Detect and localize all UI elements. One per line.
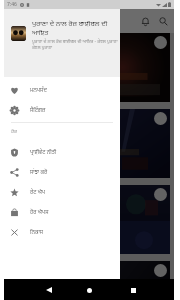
button[interactable]: Back: [42, 283, 56, 297]
button[interactable]: [120, 33, 170, 102]
button[interactable]: Search: [156, 14, 171, 29]
staticText: ਸੈਟਿੰਗਜ਼: [30, 107, 46, 114]
button[interactable]: Home: [82, 283, 96, 297]
button[interactable]: ਮਨਪਸੰਦ: [4, 80, 120, 100]
button[interactable]: [120, 261, 170, 300]
button[interactable]: Notifications: [138, 14, 153, 29]
staticText: ਨਿਕਾਸ: [30, 229, 43, 236]
staticText: ਪ੍ਰਾਈਵੇਟ ਨੀਤੀ: [30, 149, 57, 156]
staticText: ਪੁਰਾਣਾ ਦੇ ਨਾਲ ਰੋਜ਼ ਬਾਈਬਲ ਦੀ ਆਇਤ - ਕੇਵਲ ਪ…: [32, 39, 118, 51]
button[interactable]: [120, 185, 170, 254]
staticText: ਹੋਰ ਐਪਸ: [30, 209, 49, 216]
button[interactable]: ਹੋਰ ਐਪਸ: [4, 202, 120, 222]
button[interactable]: Recents: [126, 283, 140, 297]
staticText: ਹੋਰ: [11, 129, 17, 136]
button[interactable]: ਨਿਕਾਸ: [4, 222, 120, 242]
staticText: ਪੁਰਾਣਾ ਦੇ ਨਾਲ ਰੋਜ਼ ਬਾਈਬਲ ਦੀ ਆਇਤ: [32, 20, 118, 38]
staticText: ਮਨਪਸੰਦ: [30, 87, 47, 94]
staticText: ਰੇਟ ਐਪ: [30, 189, 46, 196]
button[interactable]: [120, 109, 170, 178]
staticText: ਸਾਂਝਾ ਕਰੋ: [30, 169, 48, 176]
button[interactable]: ਸਾਂਝਾ ਕਰੋ: [4, 162, 120, 182]
button[interactable]: ਪ੍ਰਾਈਵੇਟ ਨੀਤੀ: [4, 142, 120, 162]
staticText: 7:46: [7, 1, 17, 8]
button[interactable]: ਰੇਟ ਐਪ: [4, 182, 120, 202]
button[interactable]: ਸੈਟਿੰਗਜ਼: [4, 100, 120, 120]
